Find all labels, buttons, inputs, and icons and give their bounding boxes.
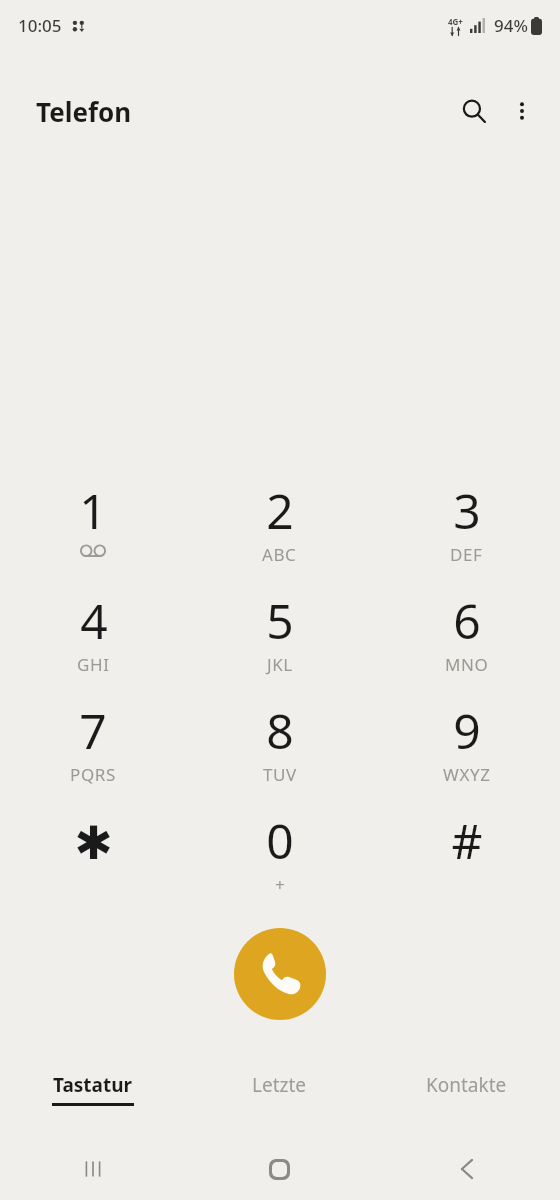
staticText: JKL [267,653,293,676]
staticText: 9 [453,698,481,763]
staticText: 3 [453,478,481,543]
staticText: 0 [266,808,294,873]
button[interactable]: 1 [0,478,186,588]
button[interactable]: 0 [186,808,373,918]
staticText: PQRS [70,763,116,786]
button[interactable]: Letzte Apps [0,1138,186,1200]
staticText: 7 [79,698,107,763]
button[interactable]: Zurück [373,1138,560,1200]
staticText: ✱ [74,816,113,870]
staticText: 4G+ [448,16,463,27]
staticText: Letzte [252,1072,307,1098]
staticText: # [451,808,483,873]
button[interactable]: 4 [0,588,186,698]
button[interactable]: 7 [0,698,186,808]
staticText: GHI [77,653,110,676]
staticText: 10:05 [18,14,62,37]
button[interactable]: 6 [373,588,560,698]
button[interactable]: Suchen [450,87,498,135]
button[interactable]: Startseite [186,1138,373,1200]
staticText: + [275,873,286,896]
button[interactable]: 9 [373,698,560,808]
staticText: TUV [263,763,297,786]
staticText: Kontakte [426,1072,507,1098]
staticText: 5 [266,588,294,653]
staticText: 4 [80,588,108,653]
button[interactable]: 5 [186,588,373,698]
button[interactable]: Anrufen [234,928,326,1020]
button[interactable]: # [373,808,560,918]
staticText: Tastatur [53,1072,133,1098]
staticText: ABC [262,543,297,566]
staticText: 1 [79,478,107,543]
button[interactable]: Weitere Optionen [498,87,546,135]
button[interactable]: ✱ [0,808,186,918]
staticText: 94% [494,14,528,37]
button[interactable]: 8 [186,698,373,808]
staticText: 2 [266,478,294,543]
button[interactable]: Tastatur [0,1058,186,1120]
staticText: WXYZ [443,763,491,786]
staticText: 6 [453,588,481,653]
staticText: MNO [445,653,489,676]
button[interactable]: Kontakte [373,1058,560,1120]
staticText: DEF [450,543,483,566]
button[interactable]: 3 [373,478,560,588]
button[interactable]: 2 [186,478,373,588]
button[interactable]: Letzte [186,1058,373,1120]
staticText: Telefon [36,94,132,129]
staticText: 8 [266,698,294,763]
